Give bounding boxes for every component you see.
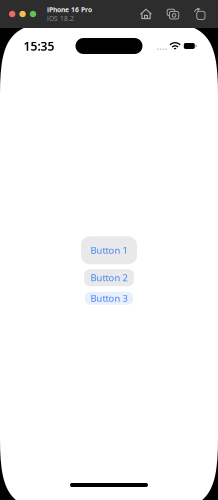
staticText: Button 3 <box>90 292 127 304</box>
button[interactable]: Button 3 <box>85 292 133 305</box>
button[interactable]: Button 2 <box>84 269 134 286</box>
button[interactable]: Button 1 <box>81 236 137 264</box>
button[interactable]: Home <box>140 8 152 20</box>
button[interactable]: Screenshot <box>167 8 179 20</box>
staticText: Button 2 <box>90 272 127 284</box>
staticText: iPhone 16 Pro <box>47 5 92 14</box>
staticText: Button 1 <box>90 244 127 256</box>
button[interactable]: Rotate <box>194 8 206 20</box>
staticText: iOS 18.2 <box>47 14 74 23</box>
staticText: 15:35 <box>23 38 54 54</box>
